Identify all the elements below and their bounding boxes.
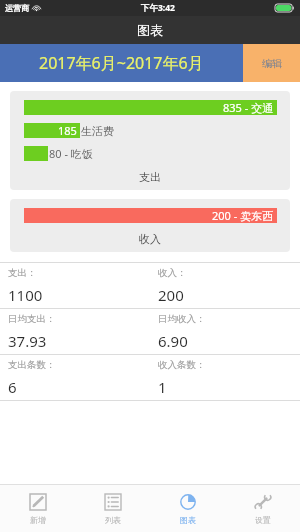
- staticText: 支出：: [8, 267, 37, 279]
- staticText: 支出条数：: [8, 359, 56, 371]
- button[interactable]: 编辑: [243, 44, 300, 82]
- button[interactable]: 设置: [225, 485, 300, 532]
- staticText: 收入条数：: [158, 359, 206, 371]
- staticText: 生活费: [81, 124, 114, 138]
- staticText: 日均支出：: [8, 313, 56, 325]
- button[interactable]: 列表: [75, 485, 150, 532]
- staticText: 设置: [255, 515, 271, 525]
- staticText: 835 - 交通: [223, 100, 274, 115]
- staticText: 运营商: [5, 3, 29, 13]
- staticText: 收入: [139, 232, 161, 246]
- staticText: 图表: [180, 515, 196, 525]
- staticText: 1100: [8, 285, 43, 305]
- staticText: 日均收入：: [158, 313, 206, 325]
- staticText: 支出: [139, 170, 161, 184]
- staticText: 80 - 吃饭: [49, 146, 93, 161]
- staticText: 185: [58, 123, 77, 138]
- button[interactable]: 200 - 卖东西: [10, 199, 290, 252]
- staticText: 下午3:42: [141, 2, 175, 14]
- button[interactable]: 2017年6月~2017年6月: [0, 44, 243, 82]
- staticText: 200 - 卖东西: [212, 208, 274, 223]
- staticText: 2017年6月~2017年6月: [39, 52, 204, 74]
- staticText: 编辑: [262, 57, 282, 70]
- staticText: 6: [8, 377, 17, 397]
- staticText: 1: [158, 377, 167, 397]
- staticText: 新增: [30, 515, 46, 525]
- staticText: 图表: [137, 22, 163, 38]
- button[interactable]: 835 - 交通: [10, 91, 290, 190]
- staticText: 200: [158, 285, 184, 305]
- staticText: 列表: [105, 515, 121, 525]
- button[interactable]: 图表: [150, 485, 225, 532]
- staticText: 收入：: [158, 267, 187, 279]
- button[interactable]: 新增: [0, 485, 75, 532]
- staticText: 6.90: [158, 331, 188, 351]
- staticText: 37.93: [8, 331, 47, 351]
